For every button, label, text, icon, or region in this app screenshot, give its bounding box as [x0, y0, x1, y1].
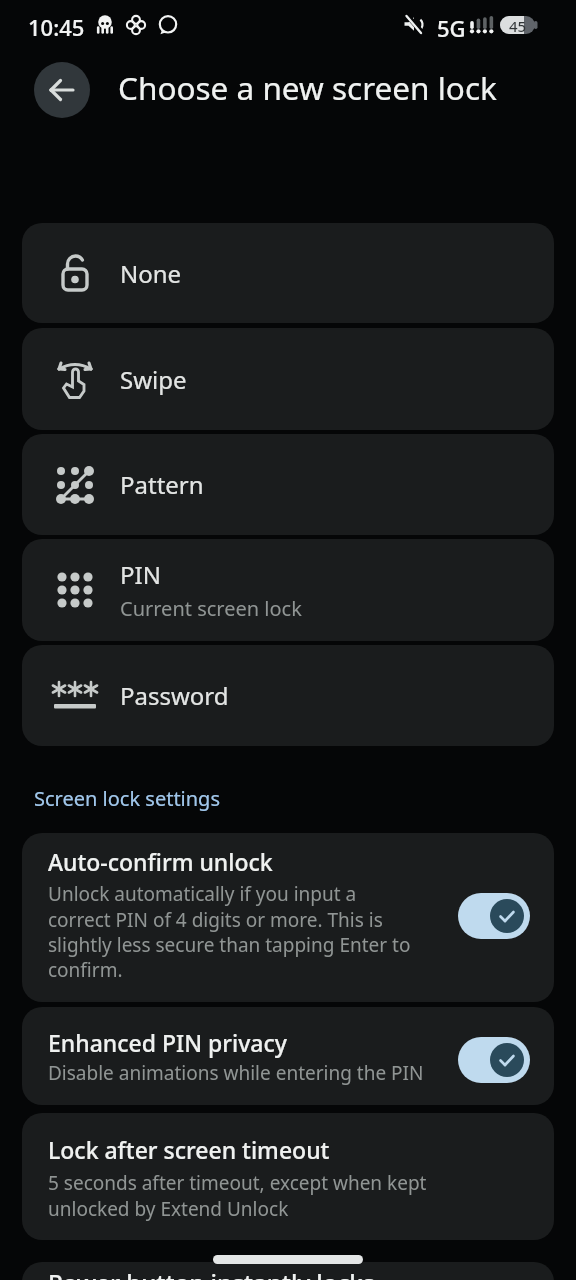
button[interactable]: Swipe — [22, 328, 554, 430]
staticText: Auto-confirm unlock — [48, 846, 273, 877]
staticText: Swipe — [120, 363, 187, 396]
button[interactable] — [458, 893, 530, 939]
staticText: Disable animations while entering the PI… — [48, 1060, 424, 1086]
staticText: Unlock automatically if you input a corr… — [48, 881, 411, 982]
staticText: 10:45 — [28, 12, 85, 42]
staticText: Lock after screen timeout — [48, 1134, 330, 1165]
staticText: Pattern — [120, 468, 204, 501]
button[interactable] — [34, 62, 90, 118]
staticText: Screen lock settings — [34, 785, 220, 812]
button[interactable]: Pattern — [22, 434, 554, 535]
staticText: Choose a new screen lock — [118, 66, 497, 109]
staticText: 45 — [509, 16, 527, 34]
button[interactable] — [458, 1037, 530, 1083]
button[interactable]: Lock after screen timeout — [22, 1113, 554, 1240]
staticText: 5 seconds after timeout, except when kep… — [48, 1170, 427, 1221]
staticText: None — [120, 257, 182, 290]
button[interactable]: Power button instantly locks — [22, 1262, 554, 1280]
button[interactable]: Auto-confirm unlock — [22, 833, 554, 1002]
staticText: Password — [120, 679, 229, 712]
staticText: 5G — [437, 13, 466, 43]
staticText: Enhanced PIN privacy — [48, 1027, 287, 1058]
button[interactable]: None — [22, 223, 554, 323]
button[interactable]: Password — [22, 645, 554, 746]
staticText: Current screen lock — [120, 595, 302, 622]
staticText: PIN — [120, 558, 161, 591]
button[interactable]: Enhanced PIN privacy — [22, 1007, 554, 1105]
staticText: Power button instantly locks — [48, 1266, 375, 1280]
button[interactable]: PIN — [22, 539, 554, 641]
